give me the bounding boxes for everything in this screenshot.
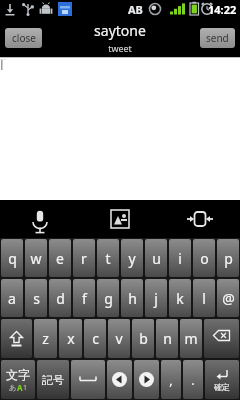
- staticText: q: [8, 249, 17, 268]
- staticText: 1: [23, 383, 28, 393]
- staticText: AB: [128, 2, 143, 17]
- button[interactable]: Delete: [204, 319, 239, 358]
- button[interactable]: y: [121, 239, 143, 277]
- staticText: send: [206, 31, 229, 45]
- staticText: tweet: [108, 42, 132, 54]
- button[interactable]: send: [200, 28, 235, 48]
- button[interactable]: g: [97, 279, 119, 317]
- staticText: @: [222, 289, 235, 308]
- staticText: b: [139, 329, 148, 348]
- staticText: g: [104, 289, 113, 308]
- button[interactable]: o: [193, 239, 215, 277]
- button[interactable]: Shift: [1, 319, 32, 358]
- staticText: x: [67, 329, 75, 348]
- button[interactable]: p: [217, 239, 239, 277]
- button[interactable]: f: [73, 279, 95, 317]
- button[interactable]: .: [183, 360, 203, 399]
- staticText: y: [128, 249, 136, 268]
- button[interactable]: 記号: [37, 360, 69, 399]
- staticText: j: [154, 289, 158, 308]
- staticText: あ: [9, 383, 17, 392]
- button[interactable]: j: [145, 279, 167, 317]
- button[interactable]: Enter: [205, 360, 239, 399]
- button[interactable]: Move left: [107, 360, 132, 399]
- staticText: close: [12, 31, 36, 45]
- button[interactable]: n: [156, 319, 178, 358]
- button[interactable]: u: [145, 239, 167, 277]
- staticText: i: [178, 249, 182, 268]
- button[interactable]: s: [25, 279, 47, 317]
- button[interactable]: c: [84, 319, 106, 358]
- button[interactable]: k: [169, 279, 191, 317]
- button[interactable]: close: [5, 28, 42, 48]
- button[interactable]: Move right: [134, 360, 159, 399]
- button[interactable]: z: [34, 319, 57, 358]
- staticText: v: [115, 329, 123, 348]
- staticText: c: [92, 329, 99, 348]
- staticText: d: [56, 289, 65, 308]
- button[interactable]: t: [97, 239, 119, 277]
- staticText: 記号: [42, 373, 64, 387]
- button[interactable]: r: [73, 239, 95, 277]
- staticText: A: [17, 382, 23, 393]
- staticText: f: [82, 289, 87, 308]
- button[interactable]: v: [108, 319, 130, 358]
- staticText: m: [184, 329, 198, 348]
- staticText: k: [176, 289, 184, 308]
- button[interactable]: d: [49, 279, 71, 317]
- button[interactable]: w: [25, 239, 47, 277]
- staticText: e: [56, 249, 64, 268]
- button[interactable]: Insert image: [80, 200, 160, 238]
- staticText: ,: [169, 371, 173, 389]
- staticText: l: [202, 289, 206, 308]
- staticText: o: [200, 249, 209, 268]
- button[interactable]: Resize keyboard: [160, 200, 240, 238]
- staticText: a: [8, 289, 16, 308]
- button[interactable]: Voice input: [0, 200, 80, 238]
- button[interactable]: i: [169, 239, 191, 277]
- staticText: .: [191, 371, 195, 389]
- staticText: s: [33, 289, 40, 308]
- staticText: t: [105, 249, 111, 268]
- button[interactable]: a: [1, 279, 23, 317]
- button[interactable]: e: [49, 239, 71, 277]
- staticText: 14:22: [208, 2, 237, 17]
- button[interactable]: h: [121, 279, 143, 317]
- button[interactable]: x: [59, 319, 82, 358]
- staticText: w: [30, 249, 42, 268]
- staticText: 文字: [6, 367, 30, 382]
- staticText: saytone: [94, 21, 146, 40]
- button[interactable]: @: [217, 279, 239, 317]
- button[interactable]: m: [180, 319, 202, 358]
- staticText: h: [128, 289, 137, 308]
- staticText: u: [152, 249, 161, 268]
- button[interactable]: Space: [71, 360, 105, 399]
- button[interactable]: q: [1, 239, 23, 277]
- staticText: z: [42, 329, 49, 348]
- button[interactable]: b: [132, 319, 154, 358]
- button[interactable]: 文字: [1, 360, 35, 399]
- staticText: n: [163, 329, 172, 348]
- staticText: r: [81, 249, 87, 268]
- button[interactable]: ,: [161, 360, 181, 399]
- button[interactable]: l: [193, 279, 215, 317]
- staticText: p: [224, 249, 233, 268]
- staticText: 確定: [214, 382, 230, 392]
